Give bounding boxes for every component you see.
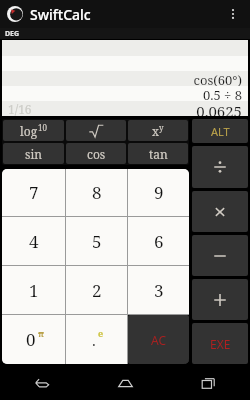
staticText: AC (151, 332, 167, 348)
button[interactable]: ALT (192, 119, 248, 143)
staticText: 1 (29, 279, 39, 302)
button[interactable]: 8 (66, 169, 127, 216)
button[interactable]: x (128, 120, 188, 141)
button[interactable]: 0 (2, 315, 65, 364)
staticText: log (20, 123, 38, 139)
button[interactable]: 4 (2, 217, 65, 265)
staticText: EXE (210, 336, 231, 352)
button[interactable]: 5 (66, 217, 127, 265)
staticText: e (98, 327, 104, 339)
staticText: 0.0625 (196, 101, 242, 116)
staticText: 2 (92, 279, 102, 302)
staticText: 6 (154, 230, 164, 253)
staticText: 0 (26, 328, 36, 351)
staticText: 9 (154, 181, 164, 204)
staticText: 5 (92, 230, 102, 253)
staticText: x (152, 123, 159, 139)
staticText: DEG (5, 29, 20, 39)
button[interactable]: 9 (128, 169, 189, 216)
button[interactable]: cos (66, 143, 126, 164)
button[interactable]: 2 (66, 266, 127, 314)
staticText: 4 (29, 230, 39, 253)
staticText: 10 (38, 122, 47, 133)
button[interactable]: 3 (128, 266, 189, 314)
staticText: cos (87, 146, 106, 162)
button[interactable]: log (3, 120, 64, 141)
staticText: 3 (154, 279, 164, 302)
button[interactable] (66, 120, 126, 141)
button[interactable] (192, 235, 248, 276)
button[interactable]: sin (3, 143, 64, 164)
staticText: y (159, 122, 164, 133)
button[interactable]: Recent apps (167, 366, 250, 400)
staticText: . (92, 330, 96, 350)
staticText: 0.5 ÷ 8 (202, 86, 242, 101)
staticText: cos(60°) (193, 71, 242, 86)
staticText: SwiftCalc (30, 5, 91, 24)
staticText: tan (149, 146, 168, 162)
button[interactable]: tan (128, 143, 188, 164)
button[interactable]: 6 (128, 217, 189, 265)
staticText: π (38, 327, 44, 339)
button[interactable]: Back (0, 366, 84, 400)
staticText: 7 (29, 181, 39, 204)
staticText: sin (25, 146, 42, 162)
button[interactable] (192, 146, 248, 188)
button[interactable]: 7 (2, 169, 65, 216)
button[interactable]: . (66, 315, 127, 364)
button[interactable]: EXE (192, 323, 248, 364)
button[interactable]: AC (128, 315, 189, 364)
button[interactable]: Home (84, 366, 167, 400)
button[interactable] (192, 191, 248, 232)
button[interactable] (192, 279, 248, 320)
staticText: ALT (211, 124, 230, 139)
button[interactable]: More options (222, 3, 244, 25)
staticText: 8 (92, 181, 102, 204)
button[interactable]: 1 (2, 266, 65, 314)
staticText: 1/16 (8, 101, 32, 116)
